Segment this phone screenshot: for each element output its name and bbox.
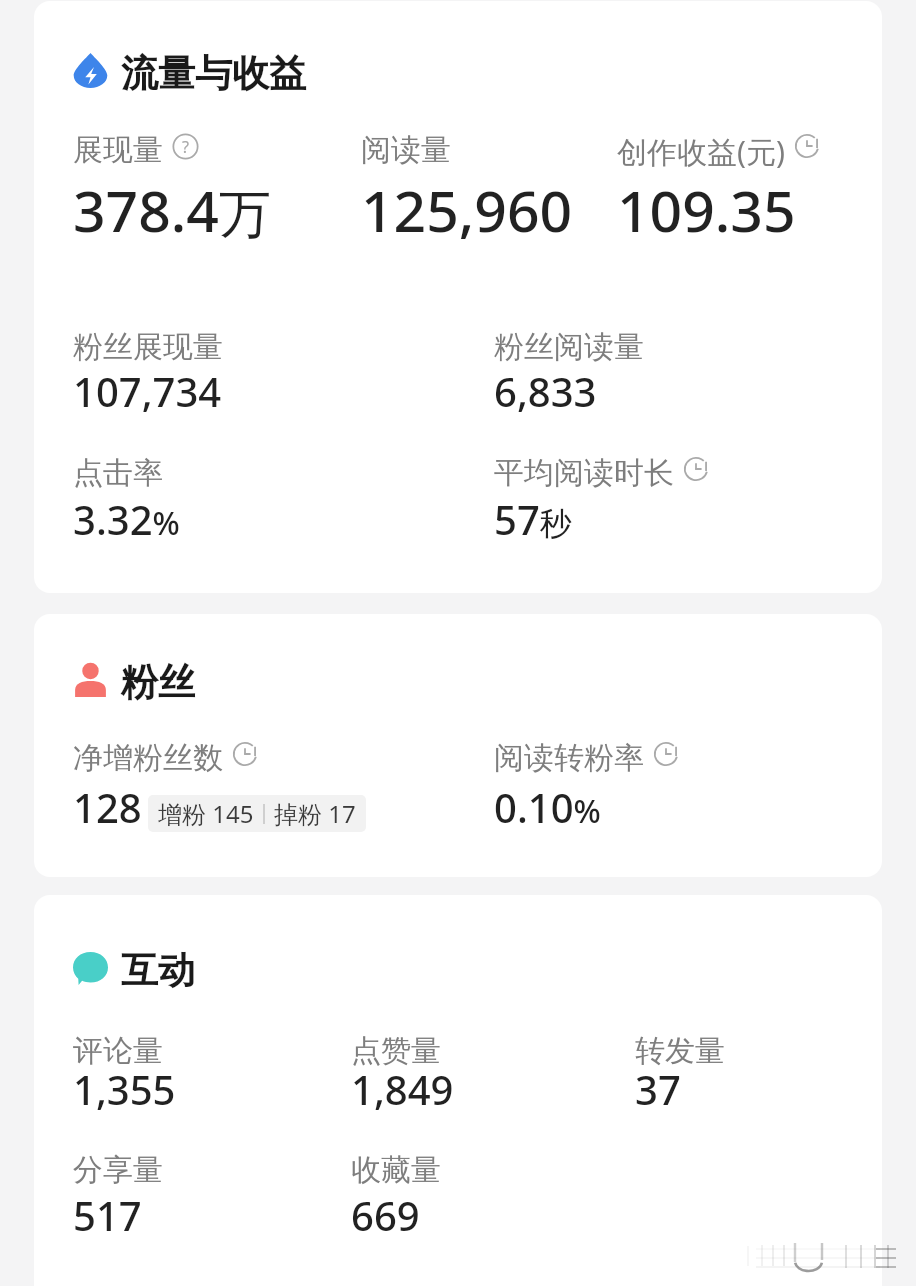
button[interactable]: 流量与收益	[73, 50, 306, 90]
button[interactable]: 创作收益(元)	[617, 131, 882, 233]
staticText: 6,833	[494, 364, 597, 418]
staticText: 分享量	[73, 1151, 163, 1189]
staticText: 掉粉 17	[274, 797, 356, 830]
staticText: 128	[73, 780, 142, 834]
staticText: 粉丝阅读量	[494, 328, 644, 366]
button[interactable]: 收藏量	[351, 1151, 631, 1228]
staticText: 点击率	[73, 454, 163, 492]
staticText: 107,734	[73, 364, 222, 418]
button[interactable]: 统计周期	[683, 456, 709, 482]
staticText: 3.32%	[73, 492, 180, 546]
button[interactable]: 收益更新时间	[794, 133, 820, 159]
staticText: 57秒	[494, 492, 572, 546]
button[interactable]: 平均阅读时长	[494, 454, 882, 532]
staticText: 评论量	[73, 1032, 163, 1070]
staticText: 1,849	[351, 1062, 454, 1116]
staticText: ?	[182, 136, 190, 158]
staticText: 粉丝展现量	[73, 328, 223, 366]
button[interactable]: 展现量	[73, 131, 353, 233]
staticText: 净增粉丝数	[73, 739, 223, 777]
staticText: 点赞量	[351, 1032, 441, 1070]
button[interactable]: 粉丝阅读量	[494, 328, 882, 404]
staticText: 0.10%	[494, 780, 601, 834]
staticText: 展现量	[73, 131, 163, 169]
staticText: 517	[73, 1188, 142, 1242]
staticText: 1,355	[73, 1062, 176, 1116]
button[interactable]: 点赞量	[351, 1032, 631, 1102]
button[interactable]: 互动	[73, 947, 195, 987]
button[interactable]: 点击率	[73, 454, 493, 532]
staticText: 流量与收益	[121, 50, 306, 97]
staticText: 收藏量	[351, 1151, 441, 1189]
staticText: 阅读量	[361, 131, 451, 169]
button[interactable]: 统计周期	[232, 741, 258, 767]
staticText: 增粉 145	[158, 797, 254, 830]
button[interactable]: 粉丝	[73, 659, 195, 699]
staticText: 阅读转粉率	[494, 739, 644, 777]
button[interactable]: 转发量	[635, 1032, 882, 1102]
staticText: 378.4万	[73, 171, 271, 249]
staticText: 669	[351, 1188, 420, 1242]
staticText: 粉丝	[121, 659, 195, 706]
staticText: 125,960	[361, 171, 573, 249]
staticText: 109.35	[617, 171, 796, 249]
staticText: 平均阅读时长	[494, 454, 674, 492]
button[interactable]: 统计周期	[653, 741, 679, 767]
button[interactable]: 净增粉丝数	[73, 739, 493, 820]
button[interactable]: 粉丝展现量	[73, 328, 493, 404]
staticText: 创作收益(元)	[617, 131, 785, 172]
button[interactable]: 阅读转粉率	[494, 739, 882, 820]
staticText: 37	[635, 1062, 681, 1116]
button[interactable]: 阅读量	[361, 131, 641, 233]
staticText: 转发量	[635, 1032, 725, 1070]
button[interactable]: 评论量	[73, 1032, 353, 1102]
staticText: 互动	[121, 947, 195, 994]
button[interactable]: 展现量说明	[172, 133, 199, 160]
button[interactable]: 分享量	[73, 1151, 353, 1228]
